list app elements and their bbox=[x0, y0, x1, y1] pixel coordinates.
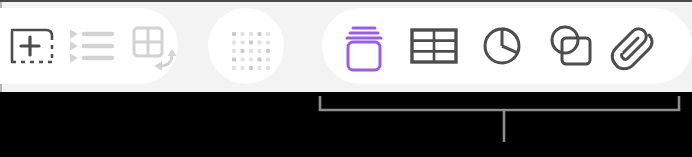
button[interactable]: Table bbox=[396, 8, 472, 84]
button[interactable]: Shapes bbox=[532, 8, 608, 84]
button[interactable]: Text box bbox=[326, 8, 402, 84]
button[interactable]: Attach file bbox=[600, 8, 676, 84]
button[interactable]: Change layout bbox=[116, 8, 192, 84]
button[interactable]: Chart bbox=[464, 8, 540, 84]
button[interactable]: Grid view bbox=[208, 8, 284, 84]
button[interactable]: New slide bbox=[0, 8, 70, 84]
button[interactable]: Bulleted list bbox=[52, 8, 128, 84]
button[interactable]: Dot grid bbox=[208, 8, 284, 84]
